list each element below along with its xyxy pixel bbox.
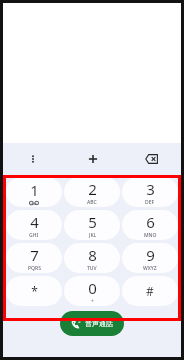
staticText: JKL [89,232,97,239]
staticText: 2 [88,179,97,199]
staticText: MNO [144,232,157,239]
button[interactable]: 9 [122,243,178,273]
button[interactable]: 1 [6,177,62,207]
staticText: PQRS [28,265,41,272]
button[interactable]: 0 [64,276,120,306]
staticText: * [31,283,38,299]
button[interactable]: 2 [64,177,120,207]
staticText: DEF [145,199,155,206]
staticText: ABC [87,199,97,206]
staticText: GHI [29,232,39,239]
staticText: TUV [87,265,97,272]
button[interactable]: # [122,276,178,306]
button[interactable]: 4 [6,210,62,240]
staticText: 5 [88,212,97,232]
staticText: 音声通話 [85,319,113,328]
staticText: 7 [30,245,39,265]
button[interactable]: 6 [122,210,178,240]
button[interactable]: Add contact [63,143,122,175]
staticText: 1 [30,180,39,200]
staticText: 3 [146,179,155,199]
button[interactable]: 3 [122,177,178,207]
staticText: # [146,283,154,299]
staticText: 0 [88,278,97,298]
staticText: WXYZ [143,265,157,272]
staticText: 4 [30,212,39,232]
button[interactable]: Backspace [122,143,181,175]
button[interactable]: * [6,276,62,306]
button[interactable]: 音声通話 [60,311,124,336]
button[interactable]: 7 [6,243,62,273]
button[interactable]: 8 [64,243,120,273]
button[interactable]: More options [3,143,63,175]
button[interactable]: 5 [64,210,120,240]
staticText: 8 [88,245,97,265]
staticText: 9 [146,245,155,265]
staticText: 6 [146,212,155,232]
staticText: + [91,298,94,305]
